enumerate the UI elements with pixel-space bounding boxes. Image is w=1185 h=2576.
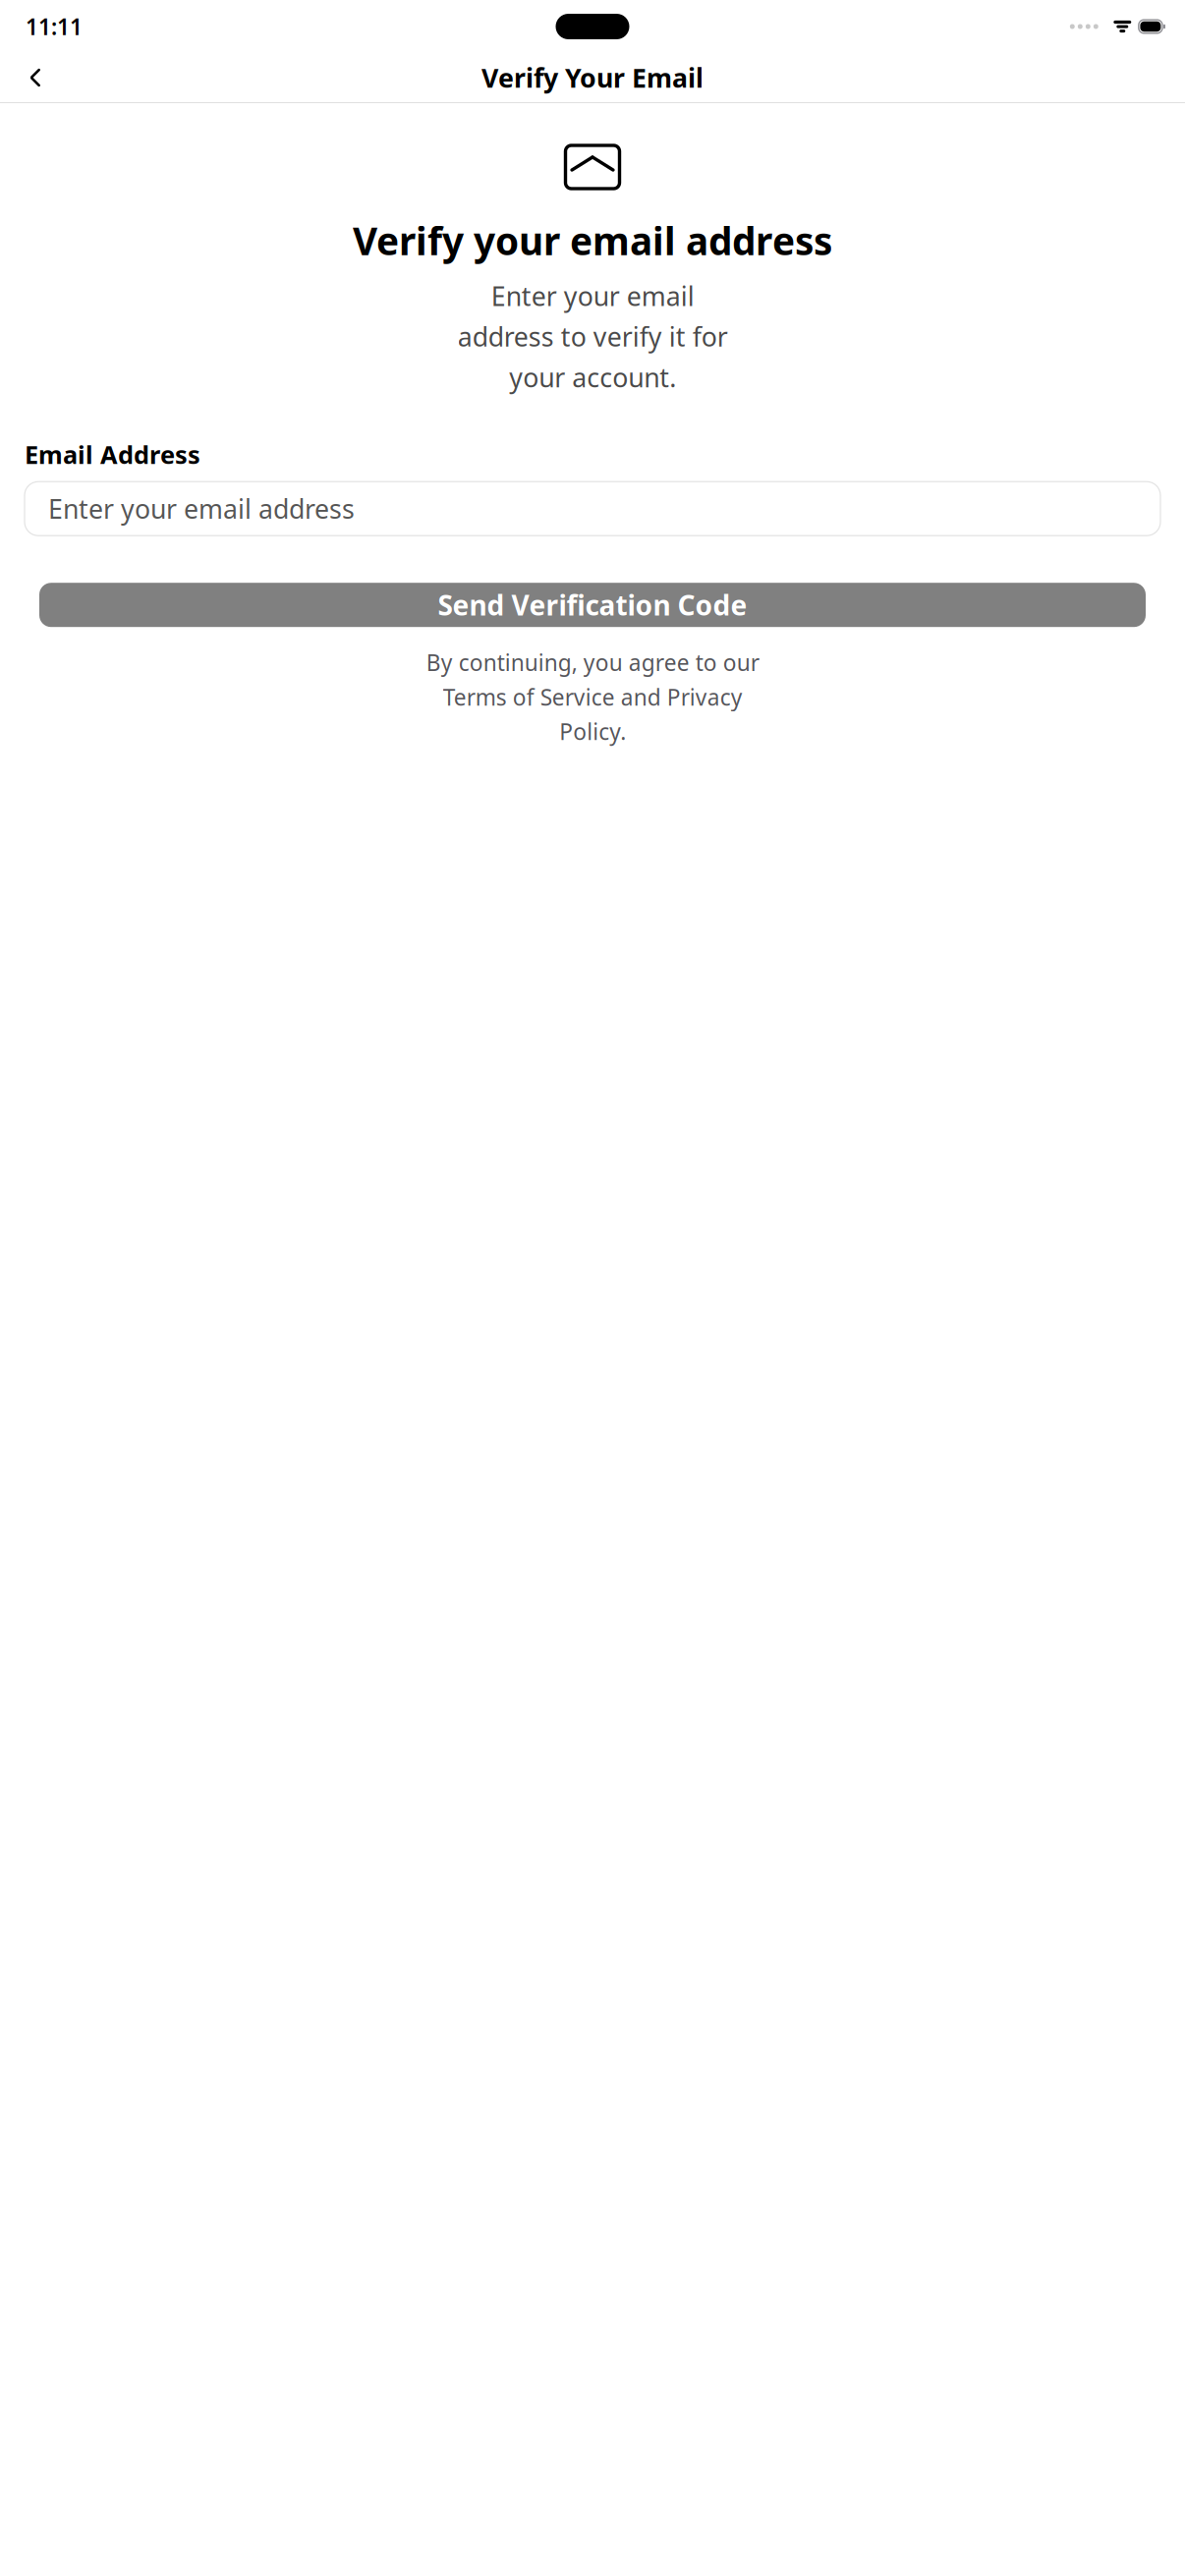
staticText: Email Address bbox=[25, 438, 200, 471]
staticText: Verify your email address bbox=[353, 215, 832, 266]
staticText: 11:11 bbox=[26, 12, 83, 41]
button[interactable]: Enter your email address bbox=[25, 482, 1160, 536]
staticText: Verify Your Email bbox=[481, 60, 704, 95]
staticText: By continuing, you agree to our Terms of… bbox=[426, 648, 759, 746]
button[interactable]: Back bbox=[12, 54, 59, 101]
staticText: Enter your email address to verify it fo… bbox=[457, 278, 728, 394]
staticText: Send Verification Code bbox=[438, 587, 747, 623]
button[interactable]: Send Verification Code bbox=[39, 583, 1146, 627]
staticText: Enter your email address bbox=[48, 491, 355, 526]
